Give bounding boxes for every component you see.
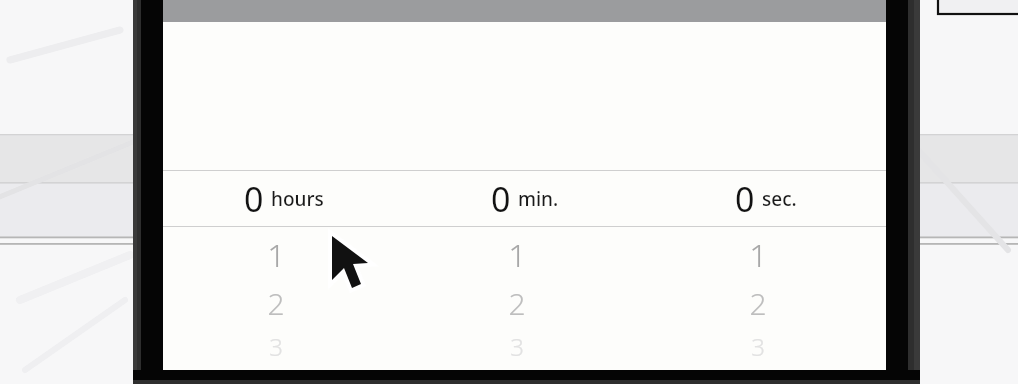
staticText: sec. — [762, 186, 797, 212]
staticText: 0 — [244, 176, 264, 222]
button[interactable]: 1 — [645, 227, 886, 370]
staticText: 0 — [735, 176, 755, 222]
button[interactable]: 1 — [163, 227, 404, 370]
staticText: hours — [271, 186, 324, 212]
button[interactable]: 1 — [404, 227, 645, 370]
button[interactable]: 0 — [163, 171, 404, 226]
staticText: 1 — [749, 233, 768, 277]
staticText: 2 — [508, 283, 526, 324]
other: Pointer — [330, 236, 364, 276]
staticText: 3 — [510, 330, 524, 363]
staticText: 3 — [269, 330, 283, 363]
staticText: 3 — [751, 330, 765, 363]
button[interactable]: 0 — [645, 171, 886, 226]
staticText: 2 — [267, 283, 285, 324]
staticText: 0 — [491, 176, 511, 222]
staticText: 1 — [267, 233, 286, 277]
staticText: 2 — [749, 283, 767, 324]
staticText: 1 — [508, 233, 527, 277]
button[interactable]: 0 — [404, 171, 645, 226]
staticText: min. — [518, 186, 559, 212]
